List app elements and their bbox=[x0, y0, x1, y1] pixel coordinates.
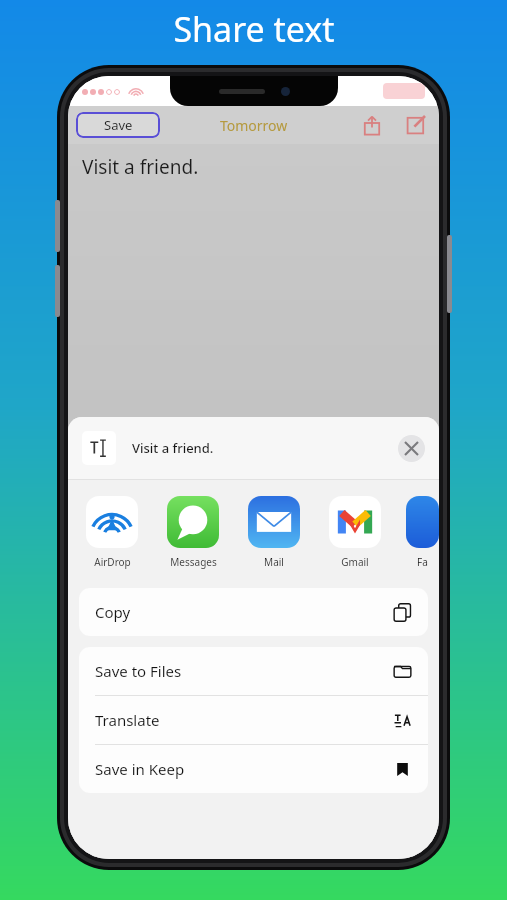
staticText: Share text bbox=[173, 6, 335, 52]
button[interactable]: Share bbox=[359, 112, 385, 138]
button[interactable]: Save in Keep bbox=[79, 745, 428, 793]
button[interactable]: Translate bbox=[79, 696, 428, 744]
button[interactable]: Close bbox=[398, 435, 425, 462]
staticText: Visit a friend. bbox=[82, 154, 199, 180]
button[interactable]: AirDrop bbox=[82, 496, 142, 569]
staticText: Gmail bbox=[341, 555, 369, 569]
staticText: Save in Keep bbox=[95, 759, 185, 779]
button[interactable]: Save bbox=[76, 112, 160, 138]
button[interactable]: Fa bbox=[406, 496, 439, 569]
staticText: Translate bbox=[95, 710, 160, 730]
button[interactable]: Messages bbox=[163, 496, 223, 569]
staticText: Tomorrow bbox=[220, 116, 288, 135]
button[interactable]: Copy bbox=[79, 588, 428, 636]
button[interactable]: Compose bbox=[403, 112, 429, 138]
staticText: Save to Files bbox=[95, 661, 182, 681]
staticText: Visit a friend. bbox=[132, 439, 214, 457]
staticText: Fa bbox=[417, 555, 428, 569]
staticText: Messages bbox=[170, 555, 217, 569]
button[interactable]: Gmail bbox=[325, 496, 385, 569]
staticText: Mail bbox=[264, 555, 284, 569]
button[interactable]: Mail bbox=[244, 496, 304, 569]
staticText: Save bbox=[104, 116, 133, 134]
staticText: AirDrop bbox=[94, 555, 131, 569]
button[interactable]: Save to Files bbox=[79, 647, 428, 695]
staticText: Copy bbox=[95, 602, 131, 622]
